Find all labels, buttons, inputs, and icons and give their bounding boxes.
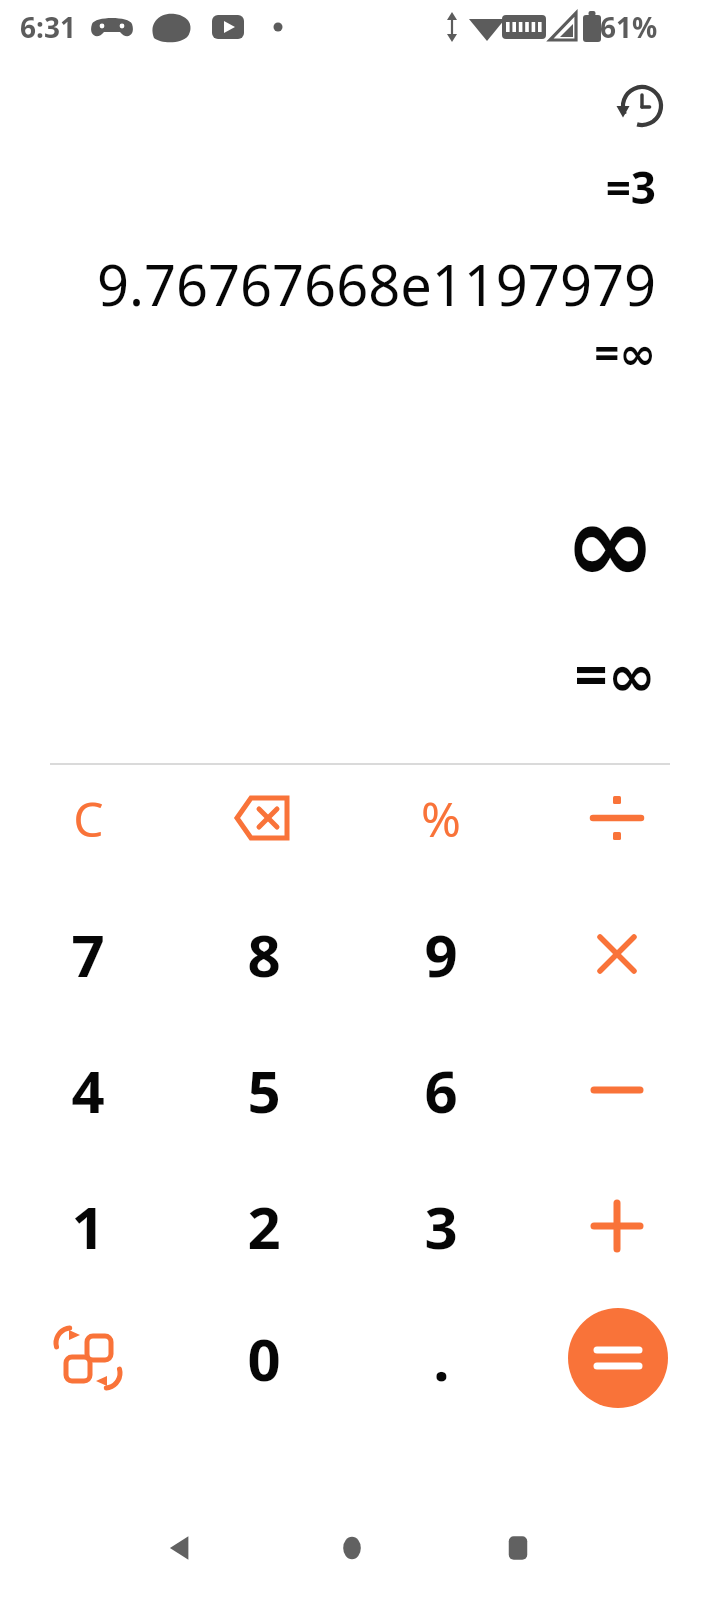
button[interactable]: 1	[12, 1168, 164, 1284]
button[interactable]: C	[12, 760, 164, 876]
staticText: 6:31	[20, 8, 76, 46]
button[interactable]: 0	[188, 1300, 340, 1416]
button[interactable]: Multiply	[541, 896, 693, 1012]
staticText: =3	[605, 157, 656, 217]
staticText: ∞	[564, 480, 656, 608]
button[interactable]: Home	[312, 1508, 392, 1588]
button[interactable]: %	[365, 760, 517, 876]
staticText: 8	[247, 915, 281, 994]
staticText: C	[73, 786, 104, 851]
staticText: 0	[247, 1319, 281, 1398]
button[interactable]: Equals	[568, 1308, 668, 1408]
staticText: =∞	[574, 634, 656, 713]
button[interactable]: 3	[365, 1168, 517, 1284]
staticText: 3	[424, 1187, 458, 1266]
staticText: 9	[424, 915, 458, 994]
button[interactable]: 8	[188, 896, 340, 1012]
staticText: 7	[71, 915, 105, 994]
staticText: 61%	[600, 8, 658, 46]
button[interactable]: Backspace	[188, 760, 340, 876]
button[interactable]: 7	[12, 896, 164, 1012]
button[interactable]: 9	[365, 896, 517, 1012]
staticText: .	[433, 1319, 450, 1398]
button[interactable]: Back	[140, 1508, 220, 1588]
button[interactable]: Plus	[541, 1168, 693, 1284]
staticText: 6	[424, 1051, 458, 1130]
button[interactable]: Minus	[541, 1032, 693, 1148]
staticText: 4	[71, 1051, 105, 1130]
button[interactable]: Divide	[541, 760, 693, 876]
staticText: 2	[247, 1187, 281, 1266]
staticText: 9.76767668e1197979	[96, 246, 656, 322]
staticText: %	[421, 786, 461, 851]
button[interactable]: 6	[365, 1032, 517, 1148]
button[interactable]: 5	[188, 1032, 340, 1148]
staticText: 5	[247, 1051, 281, 1130]
button[interactable]: Unit converter	[12, 1300, 164, 1416]
button[interactable]: .	[365, 1300, 517, 1416]
button[interactable]: Recent apps	[478, 1508, 558, 1588]
staticText: 1	[71, 1187, 105, 1266]
button[interactable]: 4	[12, 1032, 164, 1148]
button[interactable]: 2	[188, 1168, 340, 1284]
button[interactable]: History	[610, 74, 674, 138]
staticText: =∞	[594, 322, 656, 382]
